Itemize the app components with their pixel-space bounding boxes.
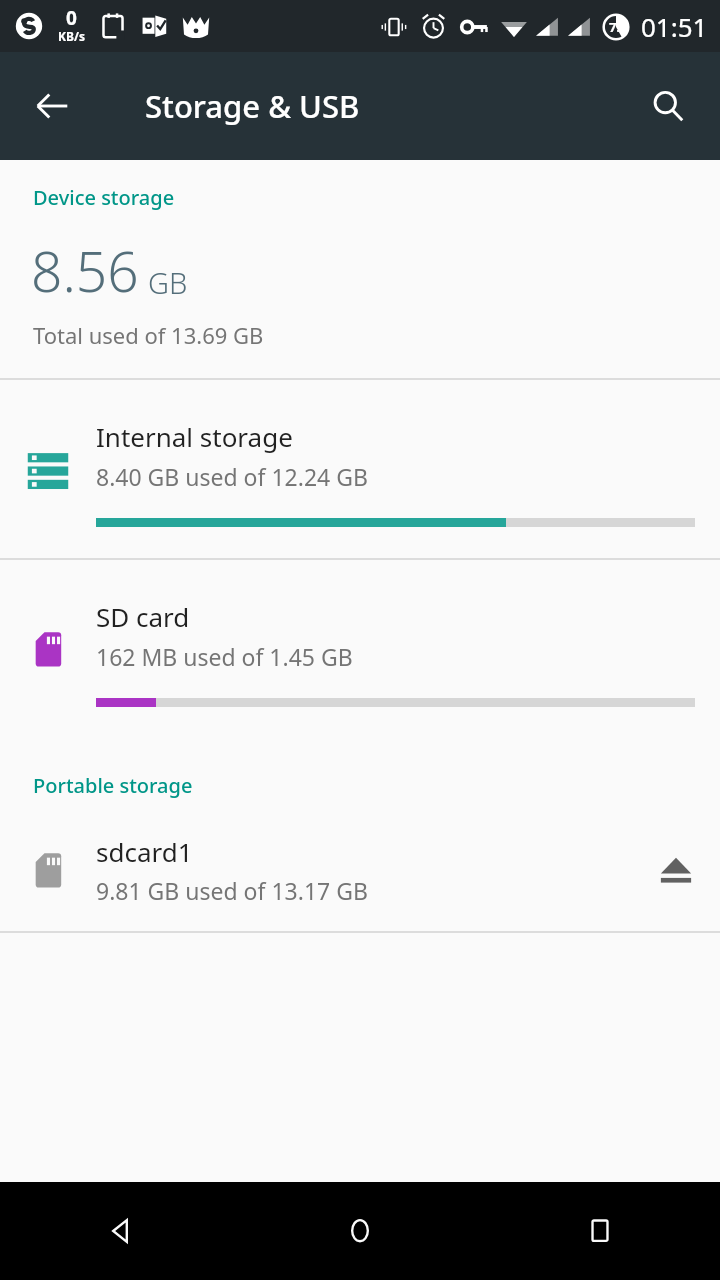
staticText: 01:51 [641, 9, 708, 44]
staticText: sdcard1 [96, 834, 193, 869]
button[interactable]: SD card [0, 560, 720, 738]
button[interactable]: Back [0, 1182, 240, 1280]
staticText: Portable storage [33, 772, 193, 799]
button[interactable]: Recent apps [480, 1182, 720, 1280]
button[interactable]: Internal storage [0, 380, 720, 558]
button[interactable]: Search [632, 70, 704, 142]
button[interactable]: Home [240, 1182, 480, 1280]
staticText: 73 [609, 18, 624, 36]
staticText: GB [148, 263, 188, 302]
staticText: Storage & USB [145, 85, 360, 127]
staticText: 8.56 [31, 233, 139, 308]
staticText: Device storage [33, 184, 175, 211]
button[interactable]: Navigate up [16, 70, 88, 142]
button[interactable]: sdcard1 [0, 825, 720, 915]
staticText: KB/s [58, 28, 85, 44]
button[interactable]: Eject sdcard1 [632, 826, 720, 914]
staticText: 9.81 GB used of 13.17 GB [96, 875, 368, 906]
staticText: SD card [96, 599, 190, 634]
staticText: 162 MB used of 1.45 GB [96, 641, 353, 672]
staticText: Total used of 13.69 GB [33, 320, 264, 350]
staticText: 0 [66, 5, 77, 31]
other: Internal storage [25, 446, 71, 492]
staticText: Internal storage [96, 419, 293, 454]
staticText: 8.40 GB used of 12.24 GB [96, 461, 368, 492]
